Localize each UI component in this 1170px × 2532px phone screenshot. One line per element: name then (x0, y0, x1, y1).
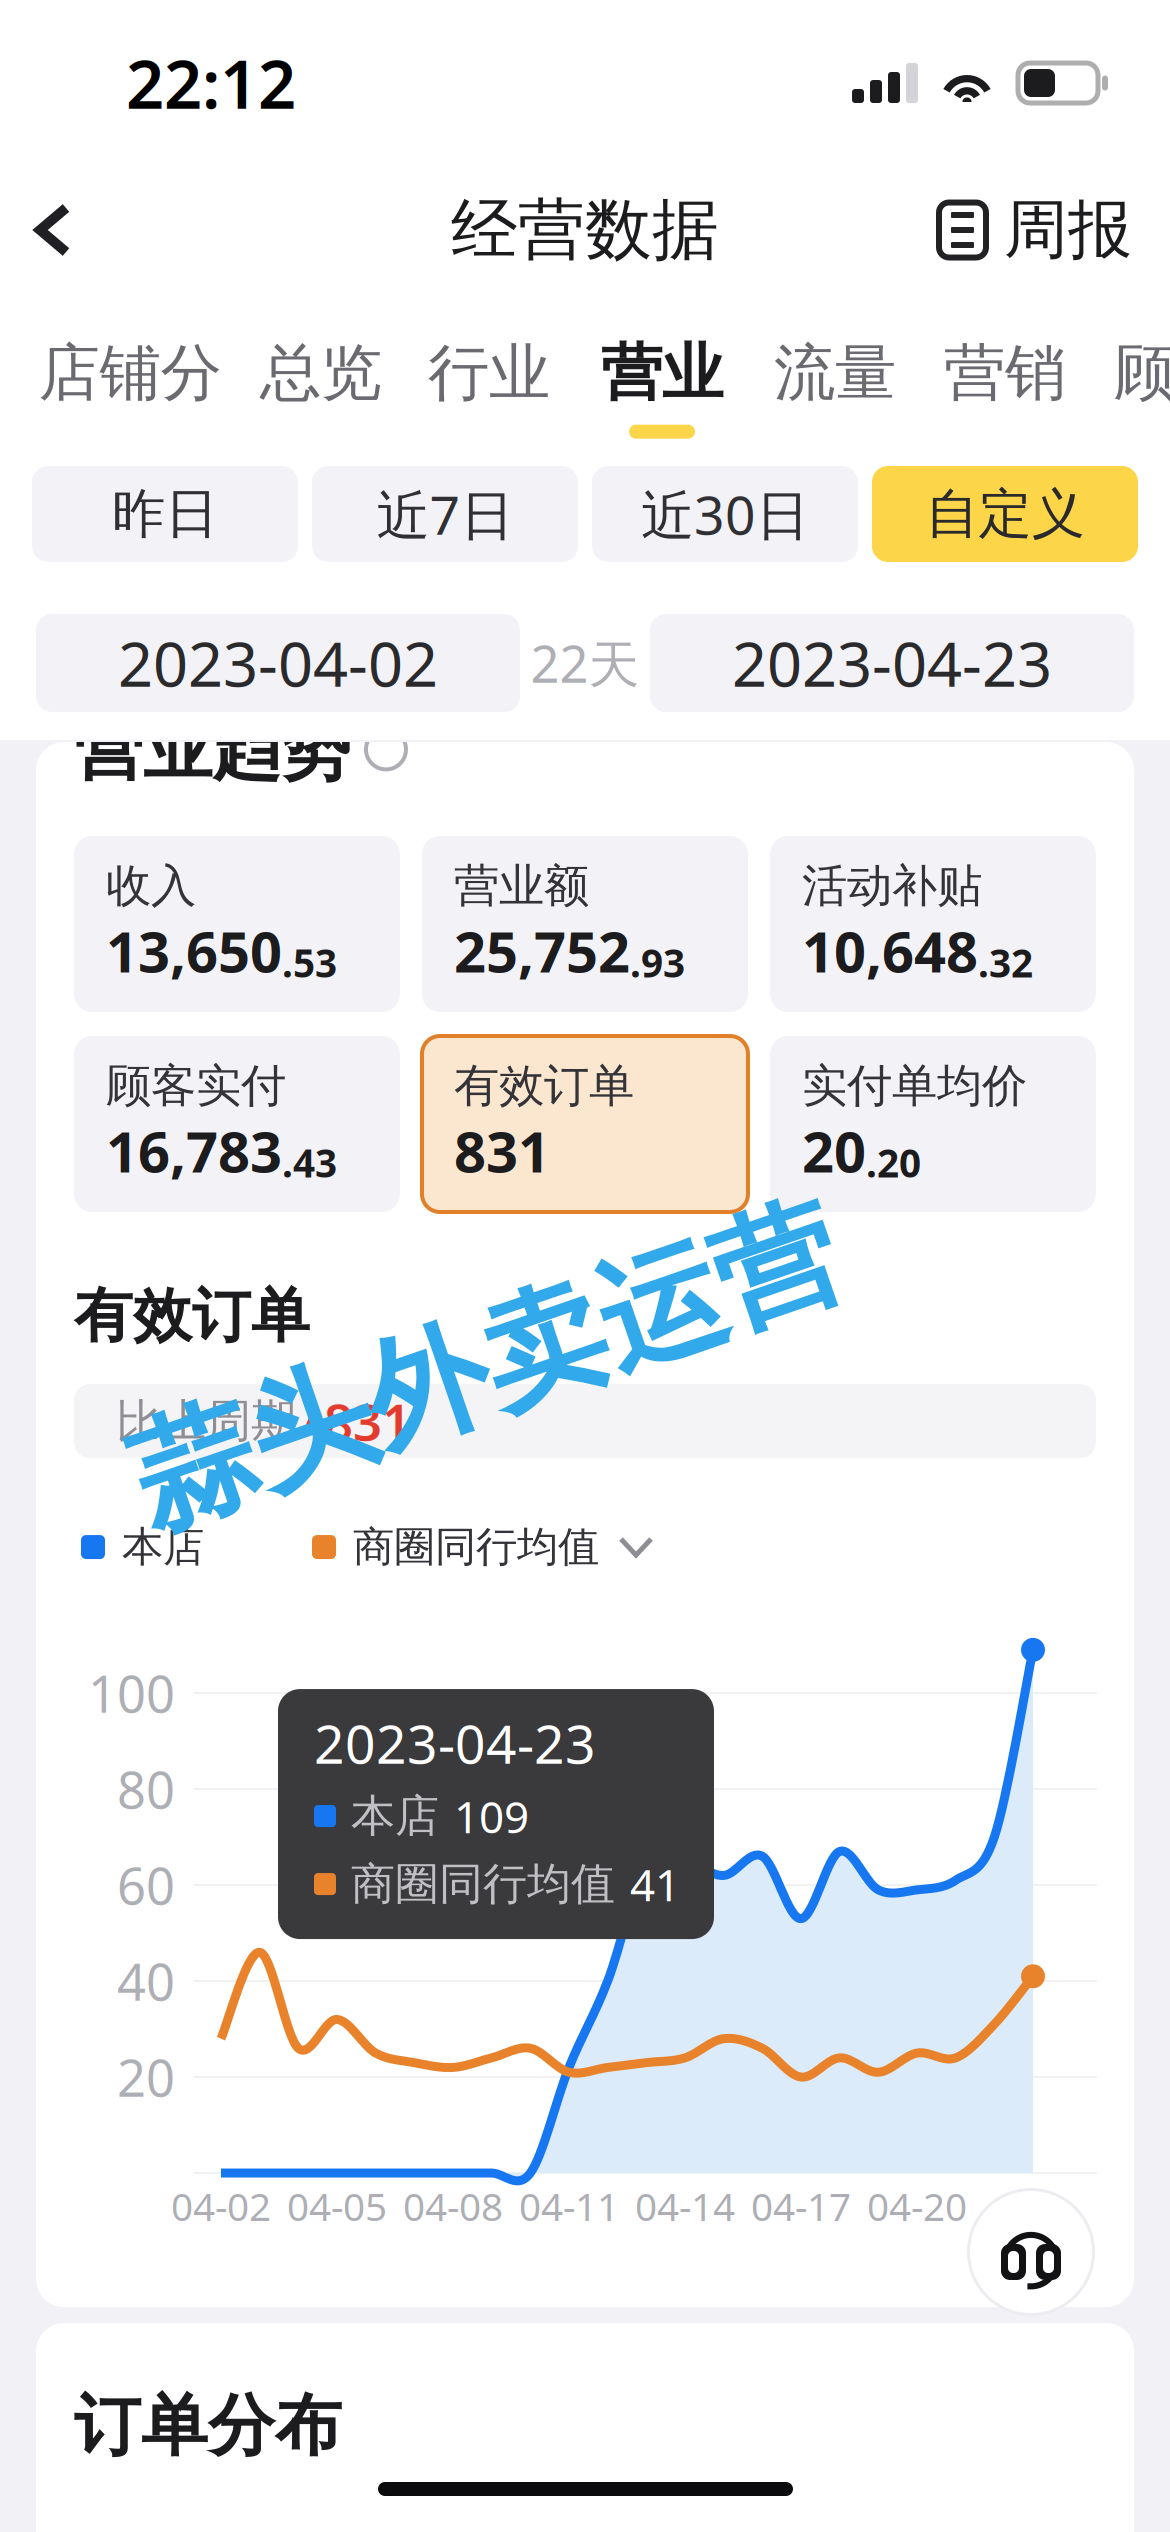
staticText: 商圈同行均值 (351, 1857, 615, 1911)
staticText: 20 (802, 1114, 866, 1188)
staticText: 收入 (106, 858, 196, 914)
staticText: 04-17 (751, 2180, 851, 2232)
staticText: 04-08 (403, 2180, 503, 2232)
staticText: 近7日 (376, 479, 513, 549)
button[interactable]: 收入 (74, 836, 400, 1012)
button[interactable]: 有效订单 (422, 1036, 748, 1212)
button[interactable]: 昨日 (32, 466, 298, 562)
staticText: 本店 (351, 1789, 439, 1843)
staticText: .43 (282, 1137, 337, 1188)
staticText: 04-05 (287, 2180, 387, 2232)
staticText: 有效订单 (74, 1280, 310, 1352)
staticText: 蒜头外卖运营 (116, 1292, 854, 1443)
staticText: 自定义 (925, 481, 1084, 547)
staticText: 109 (454, 1787, 529, 1845)
staticText: 831 (324, 1387, 411, 1455)
staticText: 04-14 (635, 2180, 735, 2232)
staticText: 2023-04-02 (118, 622, 438, 704)
staticText: 昨日 (112, 481, 218, 547)
staticText: 顾客 (1114, 335, 1170, 411)
staticText: .20 (866, 1137, 921, 1188)
button[interactable]: 自定义 (872, 466, 1138, 562)
staticText: 近30日 (641, 479, 809, 549)
button[interactable]: 近7日 (312, 466, 578, 562)
staticText: 60 (117, 1851, 175, 1919)
staticText: 04-20 (867, 2180, 967, 2232)
button[interactable]: 周报 (939, 171, 1170, 289)
staticText: 行业 (428, 335, 550, 411)
staticText: 41 (630, 1855, 680, 1913)
staticText: 本店 (122, 1522, 204, 1572)
button[interactable]: Customer service (967, 2188, 1095, 2316)
button[interactable]: 流量 (750, 329, 920, 445)
staticText: 16,783 (106, 1114, 282, 1188)
staticText: .32 (978, 937, 1033, 988)
staticText: 04-11 (519, 2180, 619, 2232)
button[interactable]: 顾客实付 (74, 1036, 400, 1212)
staticText: 2023-04-23 (314, 1708, 596, 1778)
button[interactable]: 2023-04-02 (36, 614, 520, 712)
staticText: 22天 (530, 629, 639, 697)
staticText: 20 (117, 2043, 175, 2111)
staticText: .93 (630, 937, 685, 988)
staticText: 营销 (944, 335, 1066, 411)
staticText: 营业 (601, 335, 723, 411)
staticText: 22:12 (126, 39, 296, 127)
staticText: .53 (282, 937, 337, 988)
staticText: 831 (454, 1114, 550, 1188)
button[interactable]: Expand legend (599, 1517, 673, 1577)
staticText: 顾客实付 (106, 1058, 286, 1114)
staticText: 订单分布 (74, 2385, 342, 2467)
staticText: 总览 (260, 335, 382, 411)
button[interactable]: 总览 (238, 329, 404, 445)
staticText: 10,648 (802, 914, 978, 988)
staticText: 有效订单 (454, 1058, 634, 1114)
staticText: 100 (88, 1659, 175, 1727)
staticText: 40 (117, 1947, 175, 2015)
button[interactable]: 实付单均价 (770, 1036, 1096, 1212)
staticText: 营业趋势 (74, 707, 350, 792)
button[interactable]: 营业 (574, 329, 750, 445)
staticText: 2023-04-23 (732, 622, 1052, 704)
staticText: 04-02 (171, 2180, 271, 2232)
staticText: 商圈同行均值 (353, 1522, 599, 1572)
staticText: 25,752 (454, 914, 630, 988)
button[interactable]: 营业额 (422, 836, 748, 1012)
button[interactable]: 营销 (920, 329, 1090, 445)
staticText: 80 (117, 1755, 175, 1823)
button[interactable]: 活动补贴 (770, 836, 1096, 1012)
staticText: 比上周期 (116, 1393, 296, 1449)
button[interactable]: 近30日 (592, 466, 858, 562)
staticText: 13,650 (106, 914, 282, 988)
staticText: 经营数据 (451, 189, 719, 271)
button[interactable]: 店铺分 (22, 329, 238, 445)
staticText: 流量 (774, 335, 896, 411)
button[interactable]: Back (0, 178, 110, 282)
staticText: 活动补贴 (802, 858, 982, 914)
staticText: 营业额 (454, 858, 589, 914)
button[interactable]: 顾客 (1090, 329, 1170, 445)
button[interactable]: 行业 (404, 329, 574, 445)
button[interactable]: 2023-04-23 (650, 614, 1134, 712)
staticText: 实付单均价 (802, 1058, 1027, 1114)
staticText: 店铺分 (38, 335, 221, 411)
staticText: 周报 (1004, 191, 1132, 269)
